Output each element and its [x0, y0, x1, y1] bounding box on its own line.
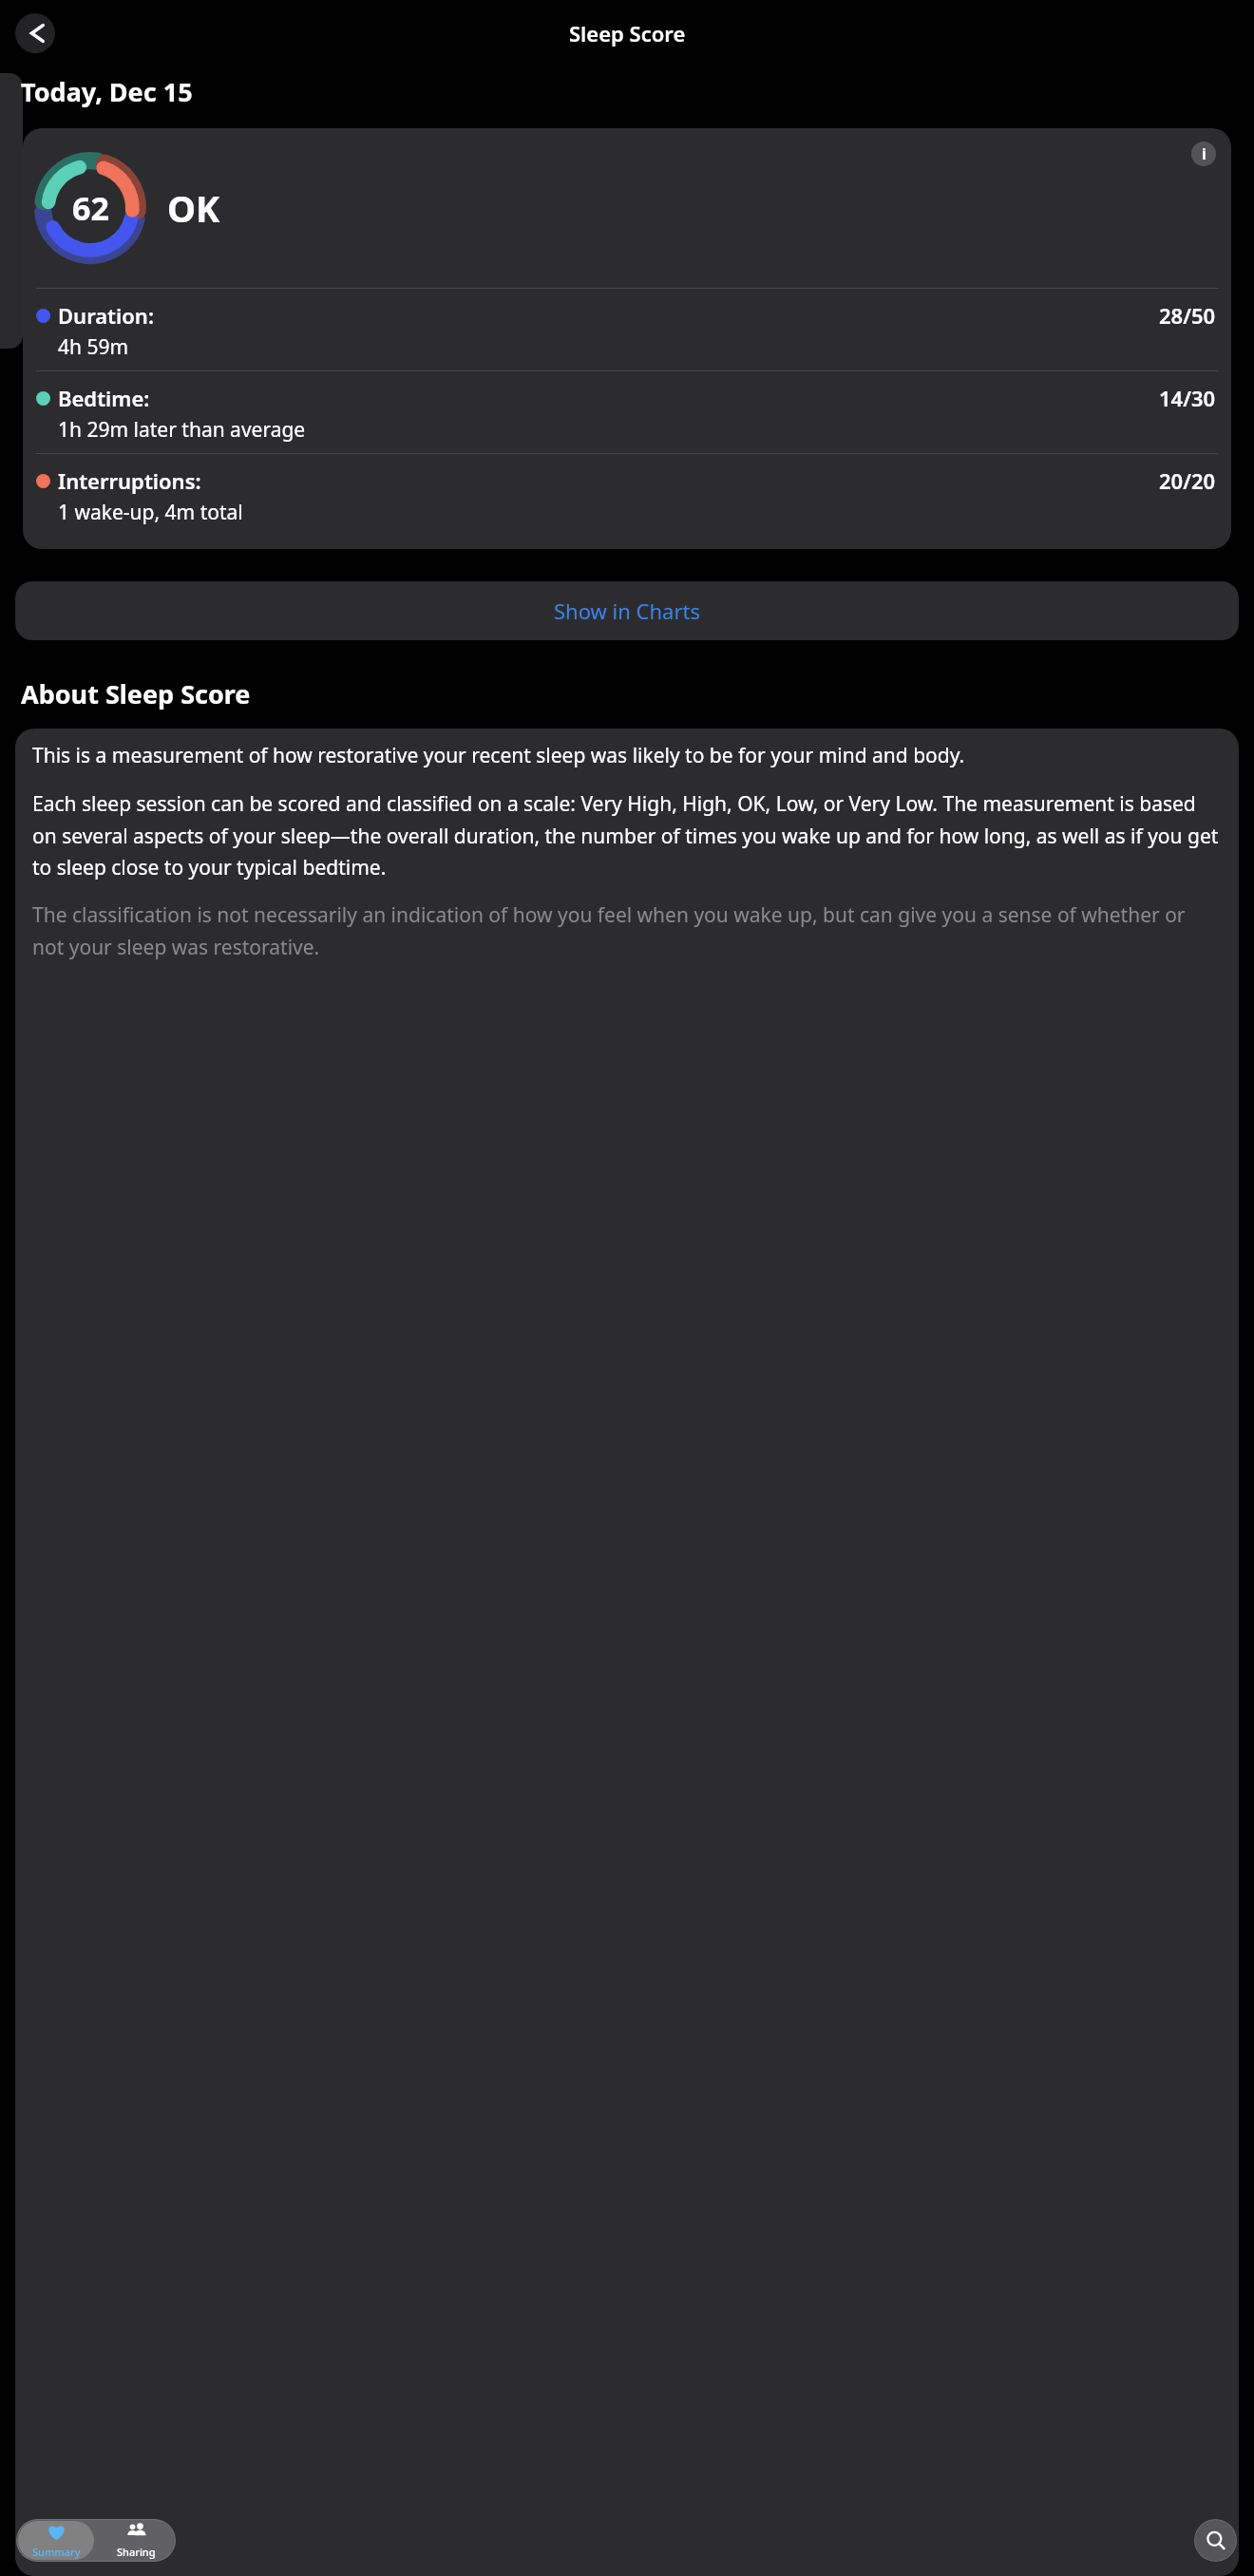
button[interactable]: Bedtime: — [23, 371, 1231, 453]
staticText: Each sleep session can be scored and cla… — [32, 790, 1222, 881]
staticText: Interruptions: — [58, 466, 201, 495]
button[interactable]: Sharing — [98, 2521, 174, 2560]
button[interactable]: Interruptions: — [23, 454, 1231, 536]
staticText: Duration: — [58, 301, 154, 330]
staticText: The classification is not necessarily an… — [32, 901, 1222, 960]
button[interactable]: Show in Charts — [15, 581, 1239, 640]
staticText: 62 — [72, 186, 109, 230]
staticText: 28/50 — [1159, 301, 1216, 330]
staticText: Bedtime: — [58, 384, 150, 412]
button[interactable]: Summary — [18, 2521, 94, 2560]
button[interactable]: Search — [1194, 2519, 1237, 2562]
button[interactable]: Duration: — [23, 289, 1231, 370]
staticText: 1 wake-up, 4m total — [58, 499, 243, 526]
staticText: Summary — [32, 2545, 81, 2559]
staticText: Show in Charts — [554, 597, 700, 625]
button[interactable]: Back — [15, 13, 55, 53]
staticText: About Sleep Score — [21, 676, 251, 711]
staticText: Sharing — [117, 2545, 156, 2559]
staticText: OK — [167, 183, 220, 233]
button[interactable]: Info about Sleep Score — [1191, 142, 1216, 166]
staticText: Today, Dec 15 — [21, 74, 193, 109]
staticText: This is a measurement of how restorative… — [32, 742, 965, 769]
staticText: Sleep Score — [569, 19, 686, 47]
staticText: 1h 29m later than average — [58, 416, 306, 444]
staticText: 20/20 — [1159, 466, 1216, 495]
staticText: i — [1202, 143, 1206, 164]
staticText: 14/30 — [1159, 384, 1216, 412]
staticText: 4h 59m — [58, 333, 129, 361]
